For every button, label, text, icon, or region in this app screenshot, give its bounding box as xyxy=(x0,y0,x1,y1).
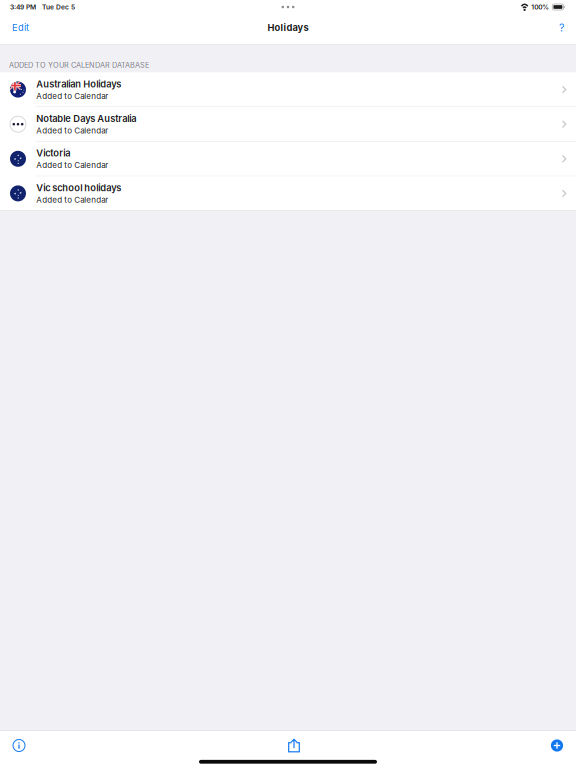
button[interactable]: Australian Holidays xyxy=(0,73,576,107)
button[interactable]: Edit xyxy=(0,14,41,44)
staticText: Victoria xyxy=(36,148,70,159)
staticText: ADDED TO YOUR CALENDAR DATABASE xyxy=(9,61,149,69)
button[interactable]: Notable Days Australia xyxy=(0,107,576,141)
staticText: ? xyxy=(559,21,564,34)
button[interactable]: Add xyxy=(542,731,572,760)
staticText: Australian Holidays xyxy=(36,78,121,90)
staticText: Notable Days Australia xyxy=(36,113,136,124)
button[interactable]: Vic school holidays xyxy=(0,176,576,210)
button[interactable]: Victoria xyxy=(0,142,576,176)
button[interactable]: Info xyxy=(4,731,34,760)
staticText: Added to Calendar xyxy=(36,126,108,135)
staticText: 3:49 PM xyxy=(10,3,36,11)
staticText: Added to Calendar xyxy=(36,160,108,170)
staticText: Vic school holidays xyxy=(36,182,121,193)
staticText: Added to Calendar xyxy=(36,91,108,101)
button[interactable]: Help xyxy=(547,14,576,44)
staticText: 100% xyxy=(531,3,549,11)
staticText: Added to Calendar xyxy=(36,195,108,205)
staticText: Holidays xyxy=(267,22,308,33)
staticText: Edit xyxy=(12,22,29,33)
button[interactable]: Share xyxy=(279,731,309,760)
staticText: Tue Dec 5 xyxy=(42,3,75,11)
